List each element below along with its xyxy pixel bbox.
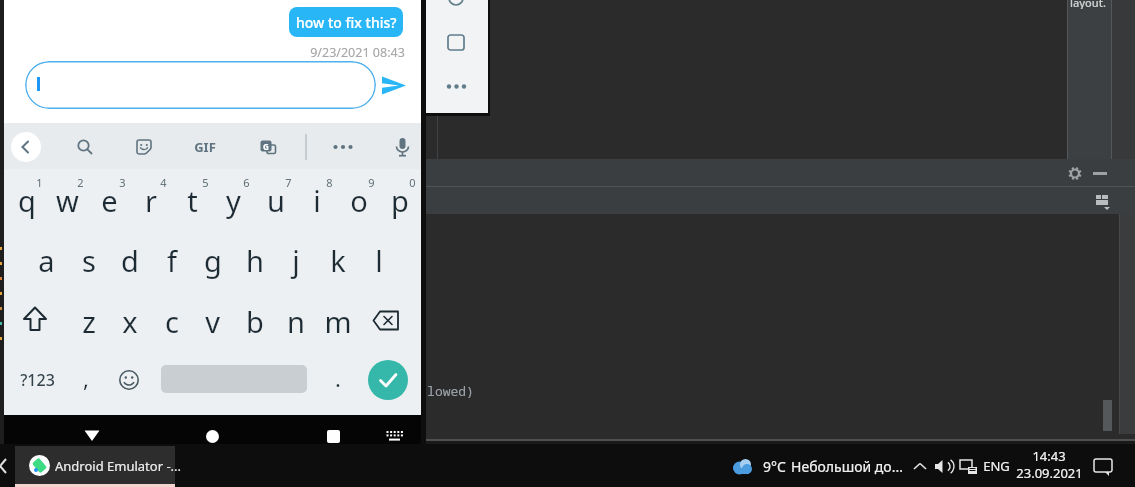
staticText: Android Emulator -...: [55, 457, 182, 475]
staticText: s: [82, 241, 96, 280]
button[interactable]: l: [358, 231, 399, 289]
button[interactable]: r: [130, 171, 171, 229]
staticText: l: [375, 241, 383, 280]
button[interactable]: [76, 138, 94, 156]
button[interactable]: b: [234, 292, 275, 350]
button[interactable]: [206, 430, 219, 443]
staticText: o: [350, 181, 368, 220]
staticText: G: [263, 141, 269, 152]
staticText: j: [292, 241, 300, 280]
staticText: e: [101, 181, 118, 220]
staticText: u: [267, 181, 285, 220]
staticText: Небольшой до...: [791, 457, 903, 476]
button[interactable]: [1095, 194, 1111, 210]
staticText: x: [122, 302, 138, 341]
staticText: g: [204, 241, 222, 280]
button[interactable]: e: [89, 171, 130, 229]
staticText: ,: [83, 363, 89, 393]
button[interactable]: 9°C: [749, 455, 799, 477]
button[interactable]: c: [151, 292, 192, 350]
button[interactable]: [368, 360, 408, 400]
staticText: y: [226, 181, 241, 220]
staticText: 8: [326, 175, 333, 190]
staticText: q: [18, 181, 36, 220]
staticText: 9/23/2021 08:43: [310, 44, 405, 60]
button[interactable]: [382, 76, 406, 95]
button[interactable]: 14:43: [1019, 447, 1079, 463]
staticText: 4: [160, 175, 167, 190]
button[interactable]: h: [234, 231, 275, 289]
staticText: 23.09.2021: [1016, 464, 1083, 480]
button[interactable]: ENG: [976, 455, 1016, 477]
staticText: .: [335, 363, 341, 393]
button[interactable]: how to fix this?: [289, 7, 403, 37]
button[interactable]: i: [296, 171, 337, 229]
button[interactable]: k: [317, 231, 358, 289]
staticText: ?123: [20, 369, 55, 391]
button[interactable]: s: [68, 231, 109, 289]
button[interactable]: ,: [71, 356, 101, 400]
button[interactable]: w: [47, 171, 88, 229]
staticText: 14:43: [1032, 447, 1066, 463]
button[interactable]: n: [275, 292, 316, 350]
staticText: 9°C: [763, 457, 786, 476]
staticText: 3: [119, 175, 126, 190]
button[interactable]: d: [109, 231, 150, 289]
button[interactable]: Android Emulator -...: [15, 446, 175, 484]
button[interactable]: q: [6, 171, 47, 229]
staticText: n: [287, 302, 305, 341]
button[interactable]: [118, 369, 140, 391]
button[interactable]: m: [317, 292, 358, 350]
button[interactable]: x: [109, 292, 150, 350]
button[interactable]: [22, 306, 48, 334]
button[interactable]: [327, 430, 340, 443]
staticText: h: [246, 241, 264, 280]
staticText: lowed): [427, 382, 474, 400]
button[interactable]: [25, 61, 376, 109]
button[interactable]: [1066, 165, 1084, 183]
button[interactable]: [135, 138, 153, 156]
button[interactable]: f: [151, 231, 192, 289]
staticText: 2: [77, 175, 84, 190]
staticText: c: [165, 302, 179, 341]
staticText: a: [38, 241, 55, 280]
button[interactable]: Небольшой до...: [782, 455, 912, 477]
staticText: d: [121, 241, 139, 280]
button[interactable]: t: [172, 171, 213, 229]
button[interactable]: j: [275, 231, 316, 289]
button[interactable]: [394, 137, 411, 158]
staticText: layout.: [1070, 0, 1106, 9]
button[interactable]: G: [259, 138, 277, 156]
staticText: 0: [409, 175, 416, 190]
button[interactable]: v: [192, 292, 233, 350]
staticText: z: [82, 302, 96, 341]
staticText: v: [205, 302, 220, 341]
button[interactable]: p: [379, 171, 420, 229]
staticText: r: [145, 181, 157, 220]
button[interactable]: GIF: [183, 135, 227, 159]
staticText: t: [187, 181, 198, 220]
staticText: GIF: [194, 138, 216, 156]
button[interactable]: ?123: [9, 360, 65, 400]
button[interactable]: [332, 138, 354, 156]
staticText: 7: [285, 175, 292, 190]
staticText: ENG: [983, 457, 1010, 475]
staticText: 5: [202, 175, 209, 190]
button[interactable]: [372, 310, 400, 331]
button[interactable]: a: [26, 231, 67, 289]
button[interactable]: u: [255, 171, 296, 229]
button[interactable]: o: [338, 171, 379, 229]
button[interactable]: [84, 429, 100, 442]
button[interactable]: g: [192, 231, 233, 289]
staticText: m: [324, 302, 352, 341]
button[interactable]: .: [323, 356, 353, 400]
staticText: b: [246, 302, 264, 341]
staticText: w: [56, 181, 79, 220]
button[interactable]: [385, 430, 405, 443]
button[interactable]: y: [213, 171, 254, 229]
staticText: k: [330, 241, 346, 280]
button[interactable]: z: [68, 292, 109, 350]
button[interactable]: [11, 132, 41, 162]
